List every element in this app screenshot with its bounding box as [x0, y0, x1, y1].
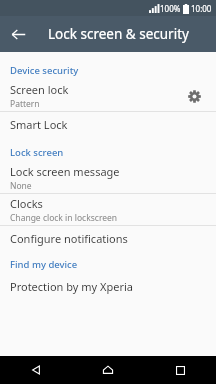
staticText: Lock screen message — [10, 164, 120, 179]
button[interactable]: Smart Lock — [0, 112, 216, 136]
staticText: Screen lock — [10, 82, 69, 97]
button[interactable]: Screen lock — [0, 80, 216, 111]
staticText: Pattern — [10, 98, 40, 110]
button[interactable]: Back — [0, 16, 36, 52]
staticText: Clocks — [10, 196, 43, 211]
staticText: Configure notifications — [10, 231, 128, 246]
staticText: Device security — [10, 64, 79, 77]
staticText: Lock screen — [10, 146, 64, 159]
button[interactable]: Clocks — [0, 194, 216, 225]
staticText: Smart Lock — [10, 117, 68, 132]
button[interactable]: Lock screen message — [0, 162, 216, 193]
staticText: None — [10, 180, 32, 192]
staticText: Lock screen & security — [48, 25, 189, 43]
button[interactable]: Home — [72, 356, 144, 384]
button[interactable]: Protection by my Xperia — [0, 274, 216, 298]
staticText: Find my device — [10, 258, 78, 271]
button[interactable]: Screen lock settings — [180, 82, 208, 110]
staticText: Change clock in lockscreen — [10, 212, 118, 224]
staticText: Protection by my Xperia — [10, 279, 133, 294]
staticText: 100% — [160, 3, 181, 14]
button[interactable]: Configure notifications — [0, 226, 216, 250]
button[interactable]: Back — [0, 356, 72, 384]
button[interactable]: Recent apps — [144, 356, 216, 384]
staticText: 10:00 — [191, 3, 212, 14]
